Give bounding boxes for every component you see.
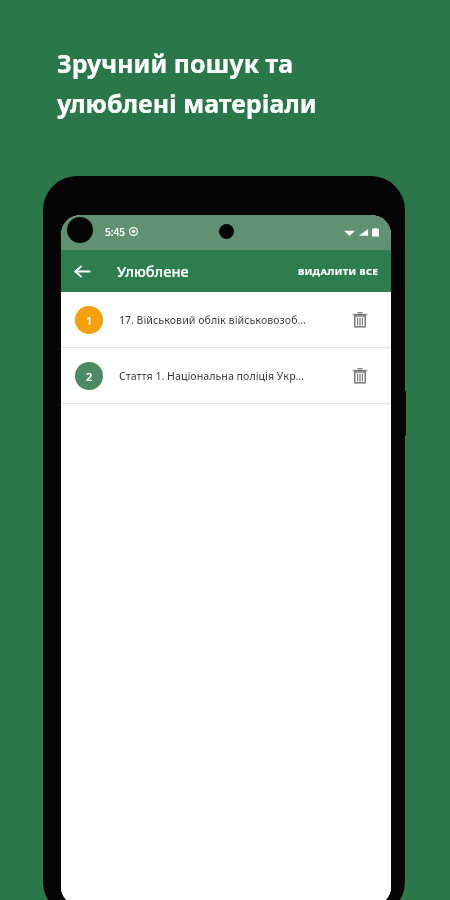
- staticText: 17. Військовий облік військовозоб…: [119, 313, 335, 327]
- button[interactable]: 1: [61, 292, 391, 347]
- button[interactable]: Back: [61, 250, 103, 292]
- staticText: улюблені матеріали: [57, 86, 317, 120]
- button[interactable]: Delete: [343, 303, 377, 337]
- button[interactable]: ВИДАЛИТИ ВСЕ: [286, 255, 391, 288]
- staticText: 5:45: [105, 225, 125, 239]
- staticText: 2: [86, 369, 93, 384]
- staticText: ВИДАЛИТИ ВСЕ: [298, 265, 379, 278]
- button[interactable]: Delete: [343, 359, 377, 393]
- staticText: 1: [86, 313, 93, 328]
- button[interactable]: 2: [61, 348, 391, 403]
- staticText: Улюблене: [117, 261, 189, 281]
- staticText: Зручний пошук та: [57, 46, 294, 80]
- staticText: Стаття 1. Національна поліція Укр…: [119, 369, 335, 383]
